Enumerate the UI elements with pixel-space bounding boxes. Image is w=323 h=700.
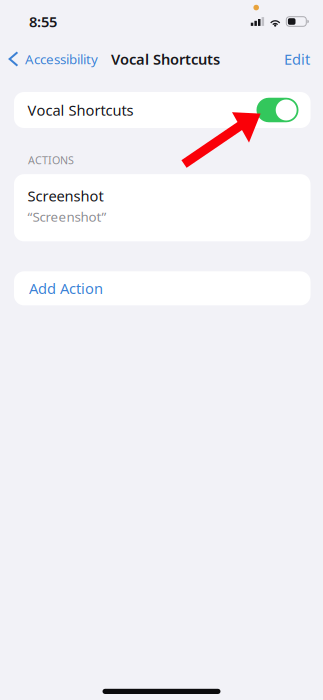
button[interactable]: Screenshot	[14, 174, 310, 241]
staticText: Vocal Shortcuts	[111, 49, 220, 69]
staticText: Accessibility	[25, 50, 98, 68]
button[interactable]: Edit	[274, 44, 323, 74]
staticText: ACTIONS	[28, 153, 74, 167]
staticText: Screenshot	[27, 186, 103, 206]
button[interactable]: Vocal Shortcuts	[14, 92, 310, 128]
button[interactable]: Accessibility	[0, 45, 98, 73]
staticText: 8:55	[29, 12, 57, 31]
staticText: Edit	[284, 49, 310, 69]
staticText: Vocal Shortcuts	[27, 100, 133, 120]
staticText: “Screenshot”	[27, 208, 106, 225]
staticText: Add Action	[29, 279, 103, 298]
button[interactable]: Add Action	[14, 271, 310, 305]
